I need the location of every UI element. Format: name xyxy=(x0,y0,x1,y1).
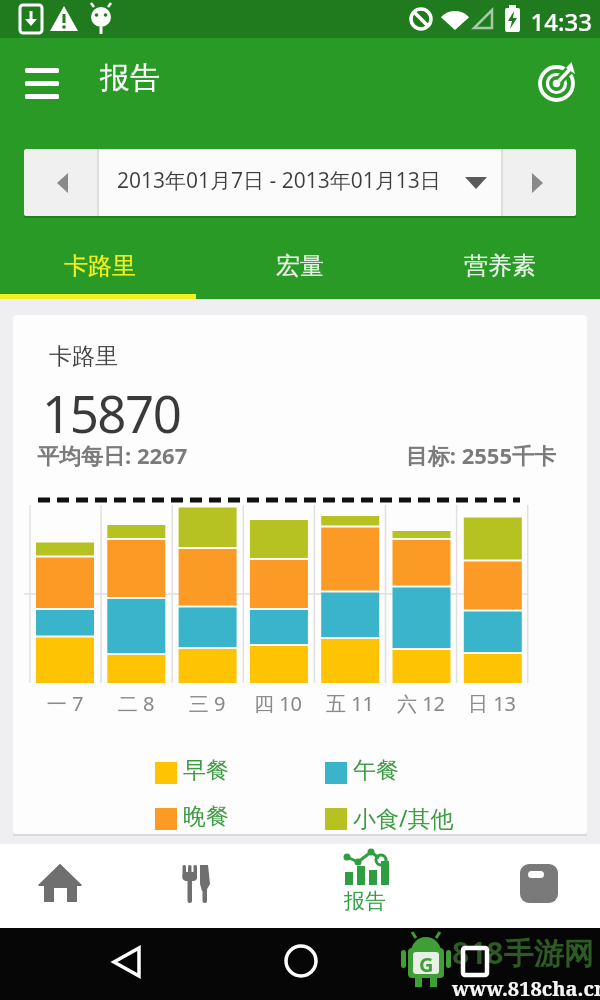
staticText: 营养素 xyxy=(400,251,600,281)
staticText: 宏量 xyxy=(200,251,400,281)
staticText: 三 9 xyxy=(172,690,242,717)
staticText: 报告 xyxy=(330,888,400,914)
staticText: www.818cha.cn xyxy=(452,975,600,1000)
button[interactable]: 卡路里 xyxy=(0,232,200,299)
staticText: 晚餐 xyxy=(183,802,229,831)
staticText: G xyxy=(419,951,434,978)
staticText: 五 11 xyxy=(315,690,385,717)
button[interactable] xyxy=(528,53,588,113)
staticText: 卡路里 xyxy=(49,342,118,371)
button[interactable] xyxy=(425,928,525,1000)
button[interactable] xyxy=(75,928,175,1000)
staticText: 818手游网 xyxy=(452,932,594,973)
button[interactable] xyxy=(470,844,600,928)
button[interactable] xyxy=(98,149,502,216)
button[interactable] xyxy=(24,149,98,216)
button[interactable] xyxy=(130,844,260,928)
button[interactable] xyxy=(502,149,576,216)
staticText: 报告 xyxy=(100,59,160,97)
button[interactable]: 宏量 xyxy=(200,232,400,299)
staticText: 小食/其他 xyxy=(353,802,454,833)
button[interactable] xyxy=(12,55,72,111)
staticText: 六 12 xyxy=(386,690,456,717)
staticText: 午餐 xyxy=(353,756,399,785)
staticText: 2013年01月7日 - 2013年01月13日 xyxy=(117,166,441,195)
button[interactable] xyxy=(300,844,430,928)
staticText: 日 13 xyxy=(457,690,527,717)
staticText: 一 7 xyxy=(30,690,100,717)
staticText: 二 8 xyxy=(101,690,171,717)
staticText: 卡路里 xyxy=(0,251,200,281)
staticText: 平均每日: 2267 xyxy=(37,440,188,470)
button[interactable]: 营养素 xyxy=(400,232,600,299)
staticText: 15870 xyxy=(42,378,181,447)
staticText: 14:33 xyxy=(440,5,592,38)
staticText: 四 10 xyxy=(243,690,313,717)
button[interactable] xyxy=(0,844,130,928)
button[interactable] xyxy=(250,928,350,1000)
staticText: 早餐 xyxy=(183,756,229,785)
staticText: 目标: 2555千卡 xyxy=(26,440,556,470)
